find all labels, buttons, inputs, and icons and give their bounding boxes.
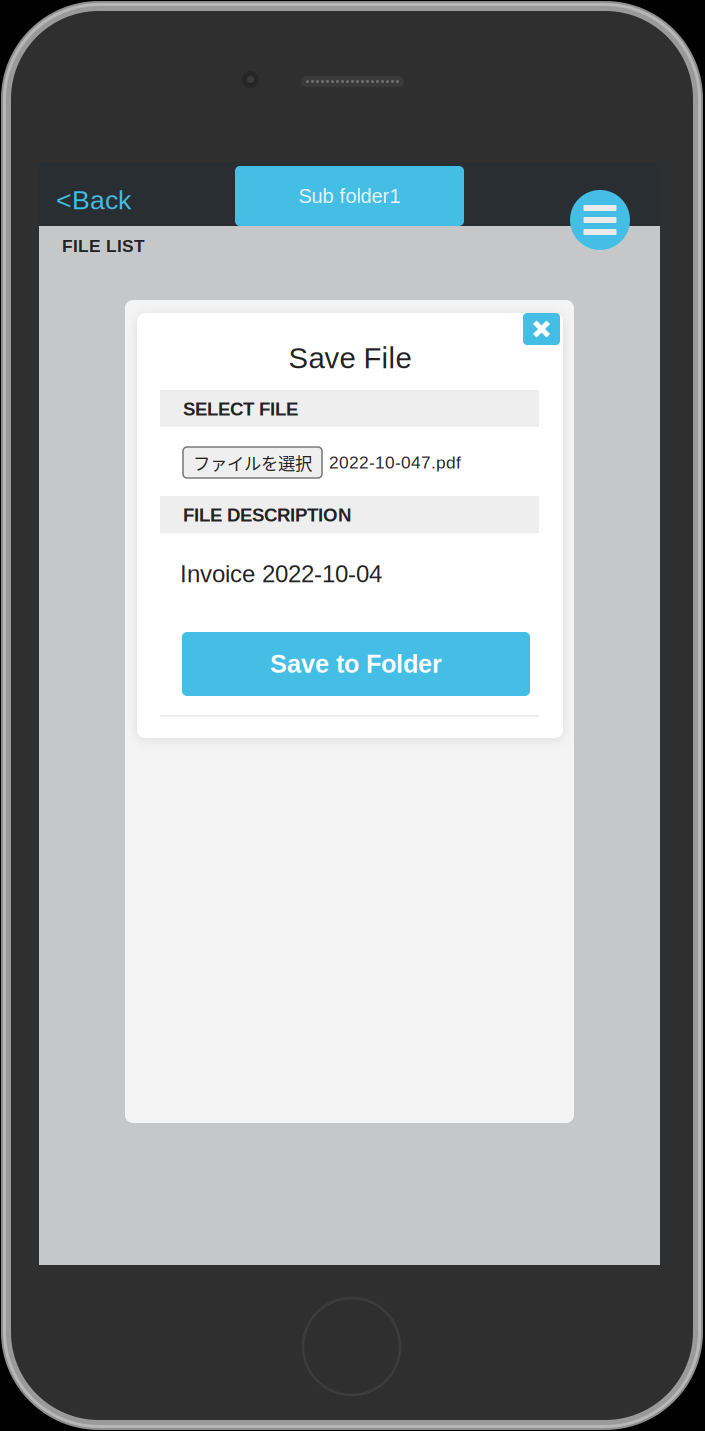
button[interactable]: Sub folder1 <box>235 166 464 226</box>
staticText: ファイルを選択 <box>193 450 312 475</box>
staticText: Sub folder1 <box>298 185 400 207</box>
button[interactable]: Save to Folder <box>182 632 530 696</box>
staticText: SELECT FILE <box>183 399 298 419</box>
button[interactable]: Close <box>523 313 560 345</box>
staticText: FILE DESCRIPTION <box>183 505 351 525</box>
staticText: Save to Folder <box>270 650 442 678</box>
staticText: FILE LIST <box>62 236 145 256</box>
button[interactable]: Menu <box>570 190 630 250</box>
button[interactable]: <Back <box>56 185 206 215</box>
staticText: 2022-10-047.pdf <box>329 453 461 472</box>
staticText: Save File <box>288 342 411 374</box>
button[interactable]: ファイルを選択 <box>183 447 322 478</box>
staticText: Invoice 2022-10-04 <box>180 561 382 587</box>
staticText: <Back <box>56 185 131 215</box>
